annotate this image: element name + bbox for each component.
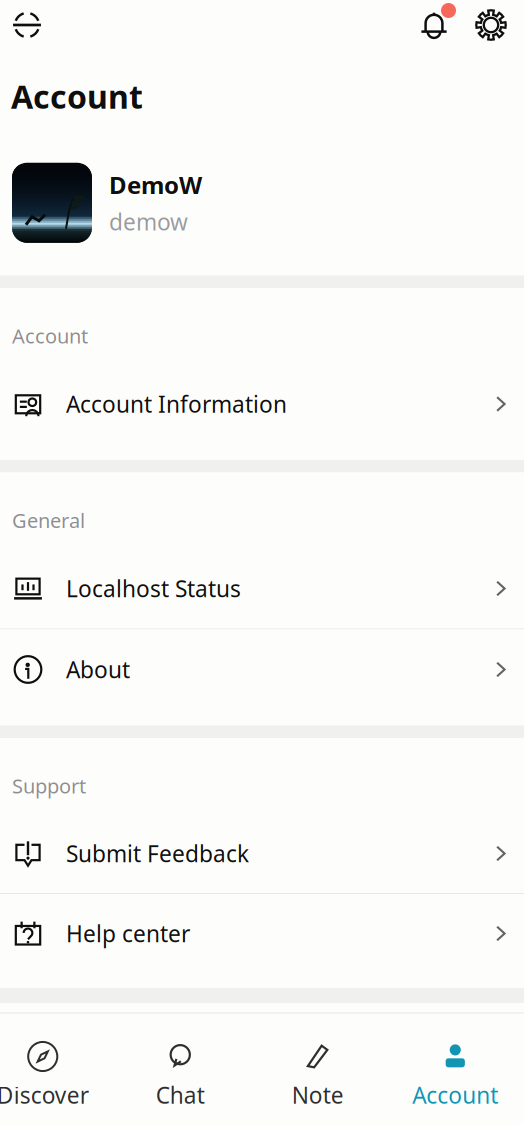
staticText: Account	[12, 322, 88, 349]
staticText: General	[12, 507, 85, 533]
button[interactable]: Account Information	[0, 364, 524, 444]
button[interactable]: Help center	[0, 894, 524, 973]
staticText: Discover	[0, 1080, 89, 1110]
staticText: Submit Feedback	[66, 838, 249, 868]
staticText: Account	[11, 75, 143, 117]
button[interactable]: Submit Feedback	[0, 814, 524, 893]
button[interactable]: Chat	[111, 1013, 249, 1125]
button[interactable]: Notifications	[425, 0, 469, 50]
button[interactable]: Scan	[5, 0, 49, 50]
button[interactable]: Settings	[469, 0, 513, 50]
button[interactable]: DemoW	[0, 130, 524, 275]
staticText: Chat	[156, 1080, 205, 1110]
staticText: Account Information	[66, 389, 287, 419]
staticText: Help center	[66, 918, 190, 948]
staticText: Note	[292, 1080, 344, 1110]
button[interactable]: Account	[386, 1013, 524, 1125]
staticText: demow	[109, 207, 188, 237]
button[interactable]: Localhost Status	[0, 548, 524, 628]
staticText: DemoW	[109, 169, 202, 201]
button[interactable]: Note	[249, 1013, 386, 1125]
staticText: Account	[412, 1080, 498, 1110]
button[interactable]: Discover	[0, 1013, 111, 1125]
staticText: Support	[12, 772, 86, 799]
staticText: Localhost Status	[66, 573, 241, 603]
button[interactable]: About	[0, 629, 524, 709]
staticText: About	[66, 654, 130, 684]
